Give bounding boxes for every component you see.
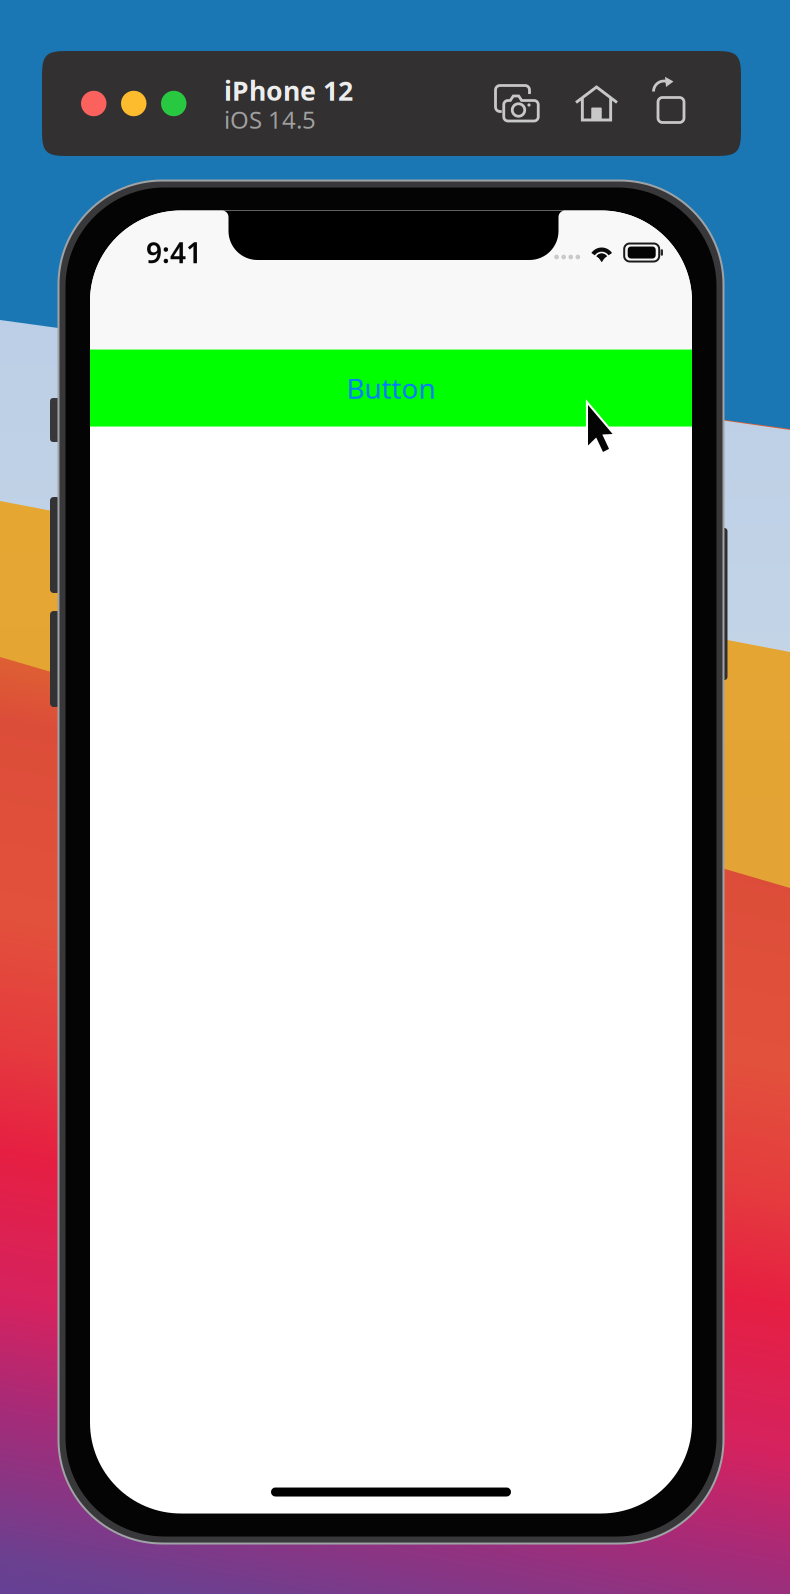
button[interactable]: Minimise xyxy=(121,91,146,116)
button[interactable]: Button xyxy=(90,349,692,426)
staticText: iOS 14.5 xyxy=(224,104,316,135)
staticText: iPhone 12 xyxy=(224,73,353,108)
staticText: Button xyxy=(346,369,435,407)
button[interactable]: Close xyxy=(81,91,106,116)
button[interactable]: Zoom xyxy=(161,91,186,116)
button[interactable]: Take screenshot xyxy=(494,84,540,122)
staticText: 9:41 xyxy=(146,234,202,271)
button[interactable]: Home xyxy=(573,84,619,122)
button[interactable]: Rotate device xyxy=(647,84,687,122)
